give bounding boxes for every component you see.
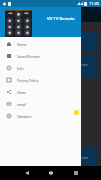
button[interactable]: Privacy Policy xyxy=(0,74,81,86)
button[interactable]: Back xyxy=(20,166,33,180)
button[interactable]: Info xyxy=(0,62,81,74)
button[interactable] xyxy=(6,32,97,52)
staticText: email xyxy=(17,102,26,107)
staticText: Privacy Policy xyxy=(17,78,39,83)
button[interactable]: Share xyxy=(0,86,81,98)
button[interactable]: email xyxy=(0,98,81,110)
staticText: Universal Remote xyxy=(60,155,89,160)
staticText: Share xyxy=(17,90,27,95)
button[interactable]: Vibration xyxy=(0,110,81,122)
staticText: 11:05 xyxy=(89,1,100,6)
button[interactable]: Home xyxy=(0,38,81,50)
button[interactable]: Recent apps xyxy=(69,166,82,180)
staticText: Home xyxy=(17,42,27,47)
button[interactable]: Saved Remote xyxy=(0,50,81,62)
button[interactable]: Smart TV Remote xyxy=(6,55,97,77)
staticText: VU TV Remote xyxy=(47,16,75,22)
button[interactable]: Universal Remote xyxy=(6,148,97,166)
staticText: Vibration xyxy=(17,114,32,119)
staticText: Saved Remote xyxy=(17,54,40,59)
staticText: Smart TV Remote xyxy=(60,62,88,67)
staticText: Info xyxy=(17,66,24,71)
button[interactable]: Home xyxy=(44,166,57,180)
